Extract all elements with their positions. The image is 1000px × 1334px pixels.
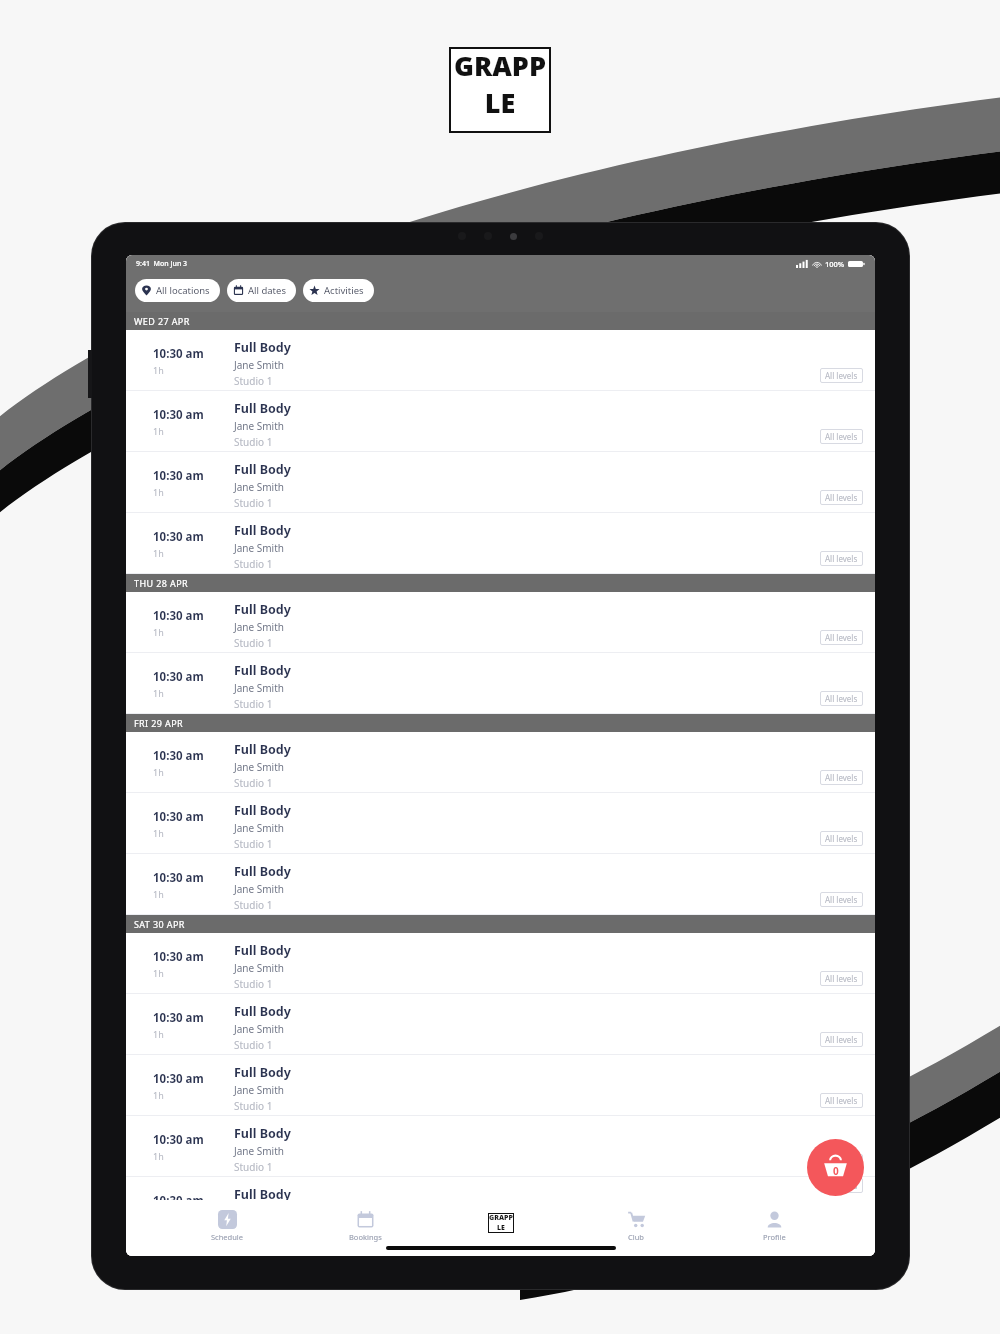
staticText: All levels (825, 973, 858, 984)
staticText: 1h (153, 1028, 164, 1040)
button[interactable]: Schedule (190, 1208, 264, 1244)
staticText: 10:30 am (153, 949, 204, 965)
button[interactable]: 10:30 am (126, 793, 875, 854)
staticText: Jane Smith (234, 1083, 284, 1097)
staticText: Studio 1 (234, 374, 273, 388)
staticText: Full Body (234, 601, 291, 618)
button[interactable]: 10:30 am (126, 452, 875, 513)
staticText: Studio 1 (234, 977, 273, 991)
button[interactable]: Activities (303, 279, 374, 302)
button[interactable]: All locations (135, 279, 220, 302)
staticText: Schedule (211, 1232, 243, 1242)
staticText: Studio 1 (234, 837, 273, 851)
button[interactable]: 10:30 am (126, 1177, 875, 1200)
button[interactable]: Bookings (328, 1208, 402, 1244)
staticText: All levels (825, 1095, 858, 1106)
staticText: All locations (156, 284, 210, 297)
button[interactable]: 10:30 am (126, 933, 875, 994)
button[interactable]: 10:30 am (126, 653, 875, 714)
staticText: 1h (153, 1150, 164, 1162)
button[interactable]: Cart, 0 items (807, 1139, 864, 1196)
staticText: ZONE (462, 123, 538, 133)
staticText: GRAPPLE (449, 47, 551, 121)
staticText: Full Body (234, 1125, 291, 1142)
staticText: 1h (153, 425, 164, 437)
staticText: Full Body (234, 400, 291, 417)
staticText: 1h (153, 364, 164, 376)
staticText: Full Body (234, 339, 291, 356)
staticText: All levels (825, 370, 858, 381)
staticText: 1h (153, 1089, 164, 1101)
button[interactable]: All dates (227, 279, 296, 302)
staticText: Jane Smith (234, 1144, 284, 1158)
staticText: Studio 1 (234, 636, 273, 650)
staticText: 10:30 am (153, 608, 204, 624)
staticText: Jane Smith (234, 760, 284, 774)
staticText: 1h (153, 687, 164, 699)
staticText: Jane Smith (234, 961, 284, 975)
staticText: Full Body (234, 1186, 291, 1203)
staticText: Studio 1 (234, 697, 273, 711)
staticText: 10:30 am (153, 1193, 204, 1209)
button[interactable]: 10:30 am (126, 330, 875, 391)
staticText: Jane Smith (234, 419, 284, 433)
button[interactable]: 10:30 am (126, 391, 875, 452)
staticText: All levels (825, 1034, 858, 1045)
staticText: All levels (825, 693, 858, 704)
staticText: All dates (248, 284, 286, 297)
staticText: 1h (153, 967, 164, 979)
staticText: Studio 1 (234, 496, 273, 510)
button[interactable]: Club (599, 1208, 673, 1244)
button[interactable]: 10:30 am (126, 1116, 875, 1177)
staticText: Studio 1 (234, 898, 273, 912)
button[interactable]: 10:30 am (126, 994, 875, 1055)
staticText: All levels (825, 772, 858, 783)
staticText: Studio 1 (234, 435, 273, 449)
staticText: Full Body (234, 802, 291, 819)
staticText: Studio 1 (234, 1160, 273, 1174)
button[interactable]: 10:30 am (126, 513, 875, 574)
button[interactable]: 10:30 am (126, 854, 875, 915)
staticText: 10:30 am (153, 1132, 204, 1148)
staticText: 10:30 am (153, 468, 204, 484)
staticText: Jane Smith (234, 1022, 284, 1036)
staticText: All levels (825, 833, 858, 844)
staticText: Full Body (234, 1003, 291, 1020)
staticText: Studio 1 (234, 776, 273, 790)
staticText: 10:30 am (153, 1010, 204, 1026)
button[interactable]: Profile (737, 1208, 811, 1244)
staticText: FRI 29 APR (134, 717, 184, 729)
staticText: All levels (825, 894, 858, 905)
staticText: Full Body (234, 461, 291, 478)
staticText: 10:30 am (153, 809, 204, 825)
button[interactable]: 10:30 am (126, 732, 875, 793)
staticText: All levels (825, 553, 858, 564)
staticText: SAT 30 APR (134, 918, 185, 930)
staticText: Full Body (234, 942, 291, 959)
staticText: All levels (825, 632, 858, 643)
staticText: Jane Smith (234, 821, 284, 835)
button[interactable]: 10:30 am (126, 1055, 875, 1116)
staticText: Full Body (234, 1064, 291, 1081)
staticText: GRAPPLE (488, 1213, 514, 1233)
staticText: 10:30 am (153, 748, 204, 764)
staticText: Activities (324, 284, 364, 297)
staticText: 10:30 am (153, 1071, 204, 1087)
staticText: 1h (153, 766, 164, 778)
staticText: All levels (825, 431, 858, 442)
staticText: 10:30 am (153, 669, 204, 685)
staticText: All levels (825, 492, 858, 503)
button[interactable]: 10:30 am (126, 592, 875, 653)
staticText: Club (628, 1232, 644, 1242)
staticText: Jane Smith (234, 358, 284, 372)
staticText: Jane Smith (234, 541, 284, 555)
staticText: Studio 1 (234, 1038, 273, 1052)
staticText: Jane Smith (234, 681, 284, 695)
staticText: 9:41 Mon Jun 3 (136, 259, 188, 269)
staticText: THU 28 APR (134, 577, 189, 589)
button[interactable]: Home (480, 1202, 522, 1244)
staticText: Full Body (234, 662, 291, 679)
staticText: Jane Smith (234, 882, 284, 896)
staticText: 10:30 am (153, 346, 204, 362)
